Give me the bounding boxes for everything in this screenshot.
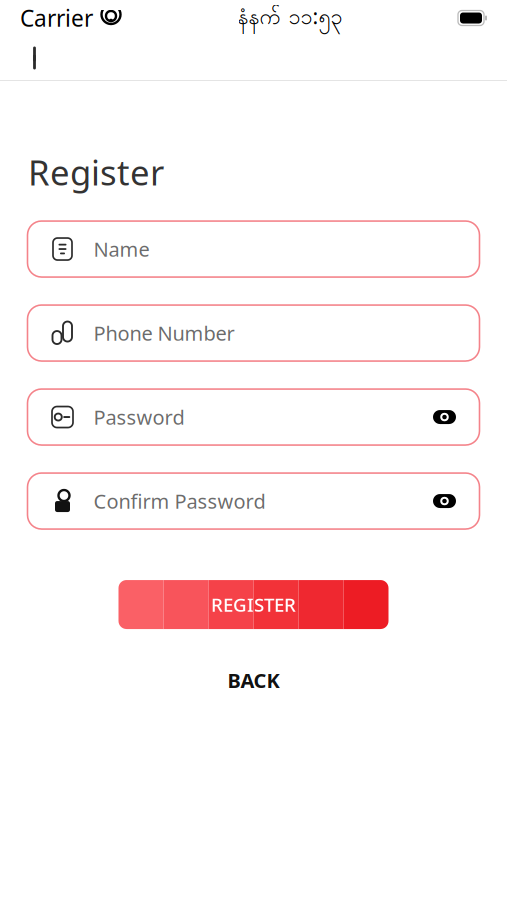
- staticText: BACK: [227, 667, 279, 694]
- staticText: Register: [28, 149, 164, 195]
- button[interactable]: Name: [27, 221, 479, 277]
- button[interactable]: Phone Number: [27, 305, 479, 361]
- staticText: Password: [93, 404, 184, 430]
- staticText: နံနက် ၁၁:၅၃: [237, 2, 342, 34]
- staticText: Carrier: [20, 3, 93, 33]
- staticText: Confirm Password: [93, 488, 265, 514]
- button[interactable]: REGISTER: [118, 580, 388, 629]
- button[interactable]: Password: [27, 389, 479, 445]
- button[interactable]: Confirm Password: [27, 473, 479, 529]
- button[interactable]: Back: [8, 36, 52, 80]
- staticText: REGISTER: [211, 592, 296, 617]
- staticText: Name: [93, 236, 149, 262]
- staticText: Phone Number: [93, 320, 234, 346]
- button[interactable]: BACK: [205, 659, 301, 702]
